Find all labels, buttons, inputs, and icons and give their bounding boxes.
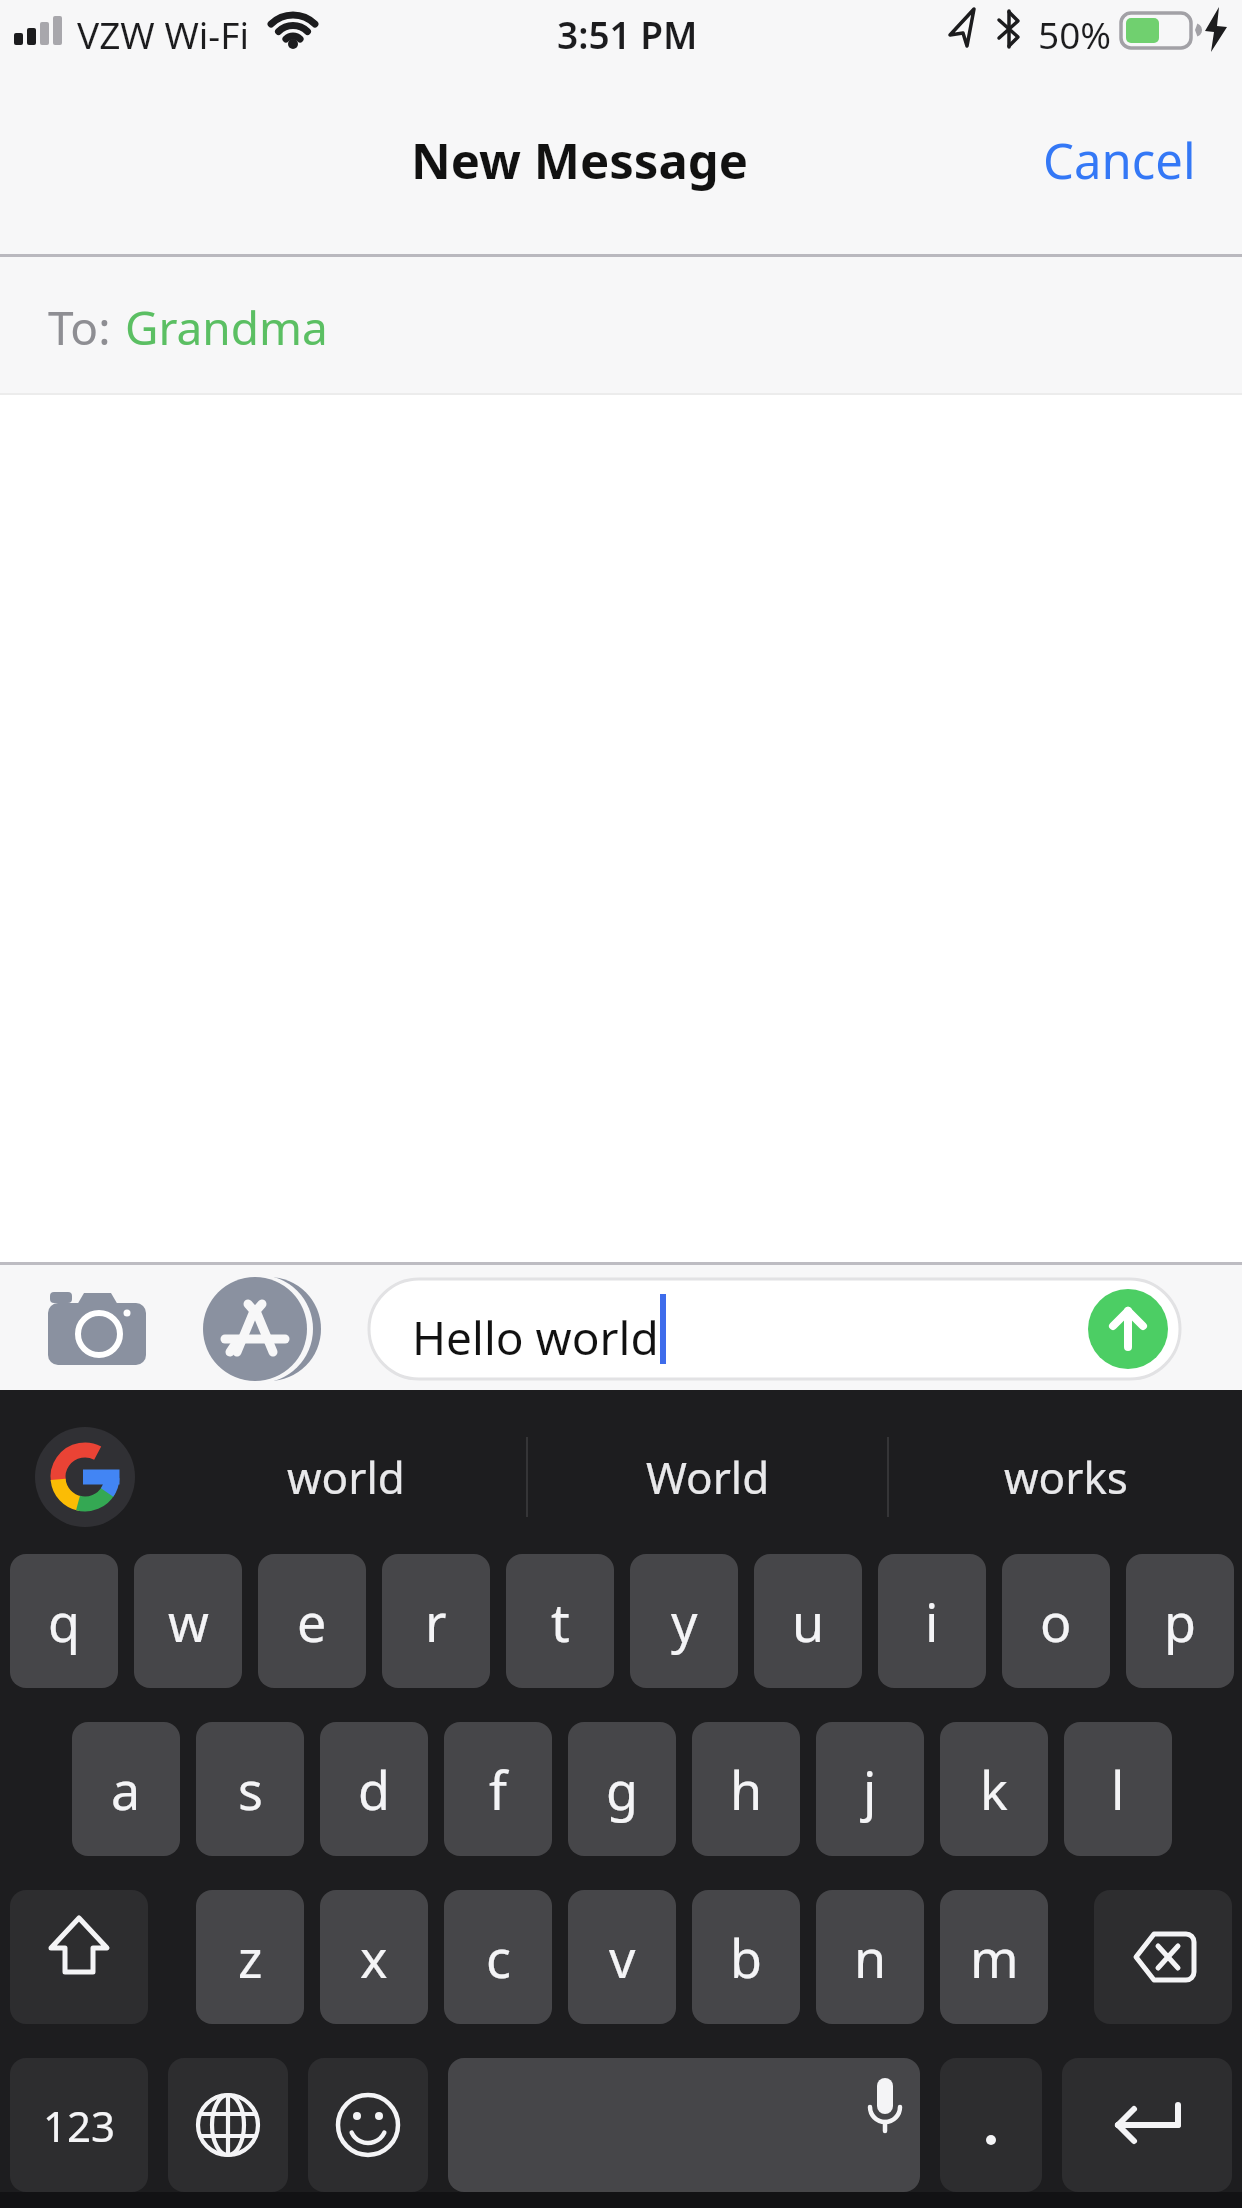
staticText: v (609, 1922, 636, 1993)
staticText: 123 (43, 2097, 116, 2154)
staticText: To: (48, 296, 111, 359)
button[interactable]: w (134, 1554, 242, 1688)
staticText: f (489, 1754, 507, 1825)
staticText: i (925, 1586, 939, 1657)
button[interactable] (40, 1280, 160, 1380)
staticText: VZW Wi-Fi (77, 9, 250, 59)
button[interactable]: works (889, 1427, 1242, 1527)
staticText: o (1040, 1586, 1072, 1657)
button[interactable]: world (166, 1427, 526, 1527)
staticText: Cancel (1043, 127, 1196, 194)
staticText: a (111, 1754, 141, 1825)
button[interactable]: e (258, 1554, 366, 1688)
button[interactable]: n (816, 1890, 924, 2024)
staticText: l (1111, 1754, 1125, 1825)
button[interactable] (205, 1277, 315, 1383)
staticText: h (730, 1754, 763, 1825)
staticText: u (792, 1586, 825, 1657)
button[interactable] (1088, 1289, 1168, 1369)
button[interactable]: h (692, 1722, 800, 1856)
button[interactable]: a (72, 1722, 180, 1856)
staticText: q (48, 1586, 80, 1657)
staticText: x (360, 1922, 388, 1993)
button[interactable]: m (940, 1890, 1048, 2024)
staticText: t (551, 1586, 570, 1657)
staticText: y (671, 1586, 698, 1657)
button[interactable]: z (196, 1890, 304, 2024)
button[interactable]: g (568, 1722, 676, 1856)
button[interactable]: y (630, 1554, 738, 1688)
staticText: k (980, 1754, 1008, 1825)
staticText: d (358, 1754, 390, 1825)
button[interactable]: b (692, 1890, 800, 2024)
staticText: 3:51 PM (557, 9, 698, 59)
staticText: works (1004, 1447, 1128, 1507)
button[interactable] (0, 257, 1242, 394)
button[interactable] (1062, 2058, 1232, 2192)
button[interactable]: x (320, 1890, 428, 2024)
button[interactable]: o (1002, 1554, 1110, 1688)
staticText: z (238, 1922, 263, 1993)
staticText: r (425, 1586, 447, 1657)
button[interactable]: q (10, 1554, 118, 1688)
staticText: Hello world (412, 1306, 659, 1369)
staticText: e (297, 1586, 327, 1657)
button[interactable] (1094, 1890, 1232, 2024)
button[interactable]: Cancel (1000, 116, 1196, 204)
button[interactable] (448, 2058, 920, 2192)
staticText: g (606, 1754, 638, 1825)
staticText: m (970, 1922, 1019, 1993)
staticText: world (287, 1447, 405, 1507)
staticText: World (646, 1447, 770, 1507)
staticText: n (854, 1922, 887, 1993)
button[interactable]: k (940, 1722, 1048, 1856)
button[interactable]: 123 (10, 2058, 148, 2192)
button[interactable]: l (1064, 1722, 1172, 1856)
button[interactable] (308, 2058, 428, 2192)
button[interactable]: c (444, 1890, 552, 2024)
staticText: w (168, 1586, 209, 1657)
staticText: s (238, 1754, 263, 1825)
button[interactable]: d (320, 1722, 428, 1856)
button[interactable]: i (878, 1554, 986, 1688)
staticText: New Message (411, 127, 749, 194)
button[interactable] (10, 1890, 148, 2024)
button[interactable] (35, 1427, 135, 1527)
button[interactable]: World (528, 1427, 887, 1527)
staticText: p (1164, 1586, 1196, 1657)
button[interactable] (369, 1279, 1180, 1379)
button[interactable]: t (506, 1554, 614, 1688)
button[interactable]: u (754, 1554, 862, 1688)
staticText: b (730, 1922, 762, 1993)
staticText: Grandma (125, 296, 328, 359)
staticText: c (486, 1922, 511, 1993)
button[interactable] (168, 2058, 288, 2192)
button[interactable]: j (816, 1722, 924, 1856)
button[interactable]: p (1126, 1554, 1234, 1688)
staticText: j (863, 1754, 877, 1825)
button[interactable]: v (568, 1890, 676, 2024)
button[interactable]: r (382, 1554, 490, 1688)
button[interactable]: f (444, 1722, 552, 1856)
button[interactable]: s (196, 1722, 304, 1856)
staticText: 50% (1038, 9, 1112, 59)
button[interactable] (940, 2058, 1042, 2192)
